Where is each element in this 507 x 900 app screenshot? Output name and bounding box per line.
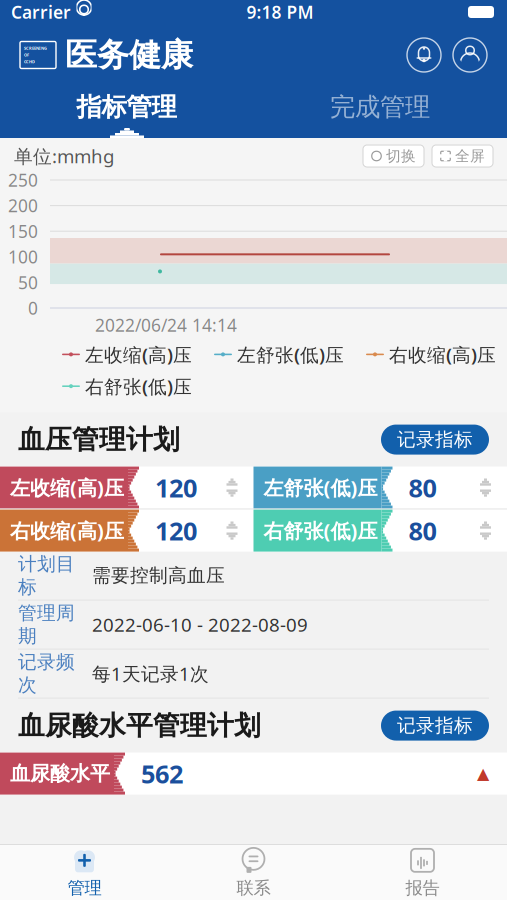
staticText: 计划目标 [18,553,75,599]
staticText: 需要控制高血压 [92,564,225,587]
staticText: 120 [155,514,197,547]
staticText: 指标管理 [76,91,176,122]
button[interactable]: 指标管理 [0,86,253,128]
staticText: 右收缩(高)压 [10,517,124,544]
staticText: 80 [408,471,436,504]
button[interactable]: 切换 [363,145,424,167]
staticText: ▲ [477,764,489,783]
staticText: 记录指标 [397,714,473,737]
staticText: 血尿酸水平 [10,761,110,786]
staticText: 管理 [67,877,101,899]
button[interactable]: 记录指标 [381,711,489,741]
staticText: 完成管理 [330,91,430,122]
staticText: 全屏 [455,147,485,165]
staticText: 150 [8,220,38,243]
staticText: 9:18 PM [246,0,313,23]
staticText: 单位:mmhg [14,144,114,168]
staticText: 报告 [405,877,439,899]
staticText: SCREENING [24,45,47,51]
staticText: 2022-06-10 - 2022-08-09 [92,612,308,637]
button[interactable]: 个人中心 [453,38,487,72]
staticText: 100 [8,245,38,268]
staticText: 2022/06/24 14:14 [95,313,237,336]
button[interactable]: 医务健康 首页 [20,35,193,75]
staticText: 562 [141,757,183,790]
button[interactable]: 管理 [0,845,169,900]
staticText: 记录频次 [18,651,75,697]
staticText: CCHD [24,59,35,64]
button[interactable]: 记录指标 [381,425,489,455]
button[interactable]: 报告 [338,845,507,900]
staticText: 左收缩(高)压 [85,342,192,367]
staticText: 医务健康 [65,35,193,75]
staticText: 记录指标 [397,428,473,451]
staticText: 120 [155,471,197,504]
staticText: 管理周期 [18,602,75,648]
staticText: 每1天记录1次 [92,661,209,686]
staticText: OF [24,52,29,58]
button[interactable]: 通知 [407,38,441,72]
button[interactable]: 联系 [169,845,338,900]
button[interactable]: 完成管理 [253,86,507,128]
staticText: 联系 [236,877,270,899]
staticText: 血尿酸水平管理计划 [18,709,261,742]
staticText: 250 [8,168,38,191]
staticText: 200 [8,194,38,217]
button[interactable]: 全屏 [432,145,493,167]
staticText: 切换 [386,147,416,165]
staticText: 右收缩(高)压 [389,342,496,367]
staticText: 右舒张(低)压 [263,517,377,544]
staticText: 80 [408,514,436,547]
staticText: 50 [18,271,38,294]
staticText: 左舒张(低)压 [237,342,344,367]
staticText: 左收缩(高)压 [10,474,124,501]
staticText: 左舒张(低)压 [263,474,377,501]
staticText: 血压管理计划 [18,423,180,456]
staticText: Carrier [11,0,71,23]
staticText: 右舒张(低)压 [85,374,192,399]
staticText: 0 [28,296,38,319]
